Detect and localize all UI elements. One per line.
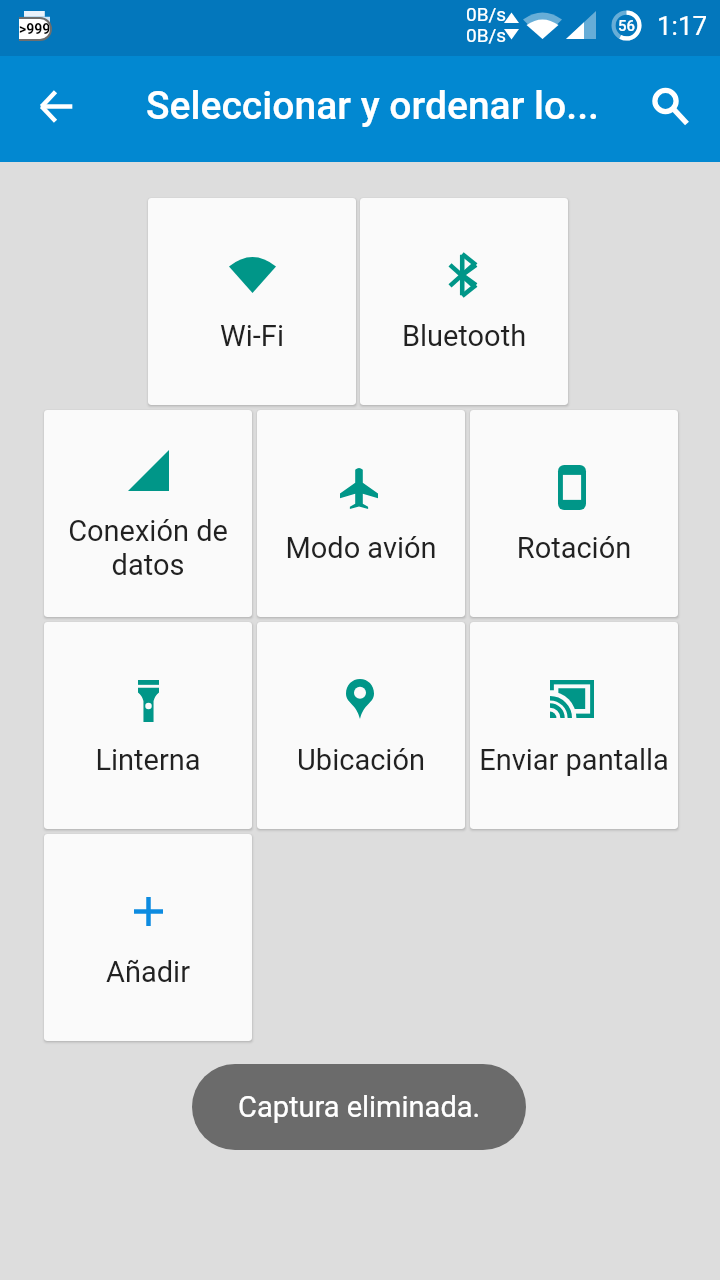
staticText: >999 (19, 21, 50, 37)
staticText: Añadir (48, 955, 248, 989)
staticText: Wi-Fi (152, 319, 352, 353)
button[interactable]: Añadir (44, 834, 252, 1041)
button[interactable]: Linterna (44, 622, 252, 829)
button[interactable]: Bluetooth (360, 198, 568, 405)
staticText: 56 (618, 17, 636, 35)
staticText: Linterna (48, 743, 248, 777)
button[interactable]: Modo avión (257, 410, 465, 617)
button[interactable]: Conexión de datos (44, 410, 252, 617)
staticText: 0B/s 0B/s (466, 3, 507, 46)
staticText: Captura eliminada. (238, 1090, 481, 1124)
staticText: Conexión de datos (48, 514, 248, 582)
staticText: Ubicación (261, 743, 461, 777)
staticText: Modo avión (261, 531, 461, 565)
button[interactable]: Back (24, 77, 88, 141)
staticText: Enviar pantalla (474, 743, 674, 777)
button[interactable]: Captura eliminada. (192, 1064, 526, 1150)
button[interactable]: Rotación (470, 410, 678, 617)
button[interactable]: Enviar pantalla (470, 622, 678, 829)
staticText: Bluetooth (364, 319, 564, 353)
staticText: 1:17 (657, 11, 708, 41)
staticText: Rotación (474, 531, 674, 565)
button[interactable]: Search (636, 77, 700, 141)
staticText: Seleccionar y ordenar lo... (146, 83, 599, 129)
button[interactable]: Ubicación (257, 622, 465, 829)
button[interactable]: Wi-Fi (148, 198, 356, 405)
